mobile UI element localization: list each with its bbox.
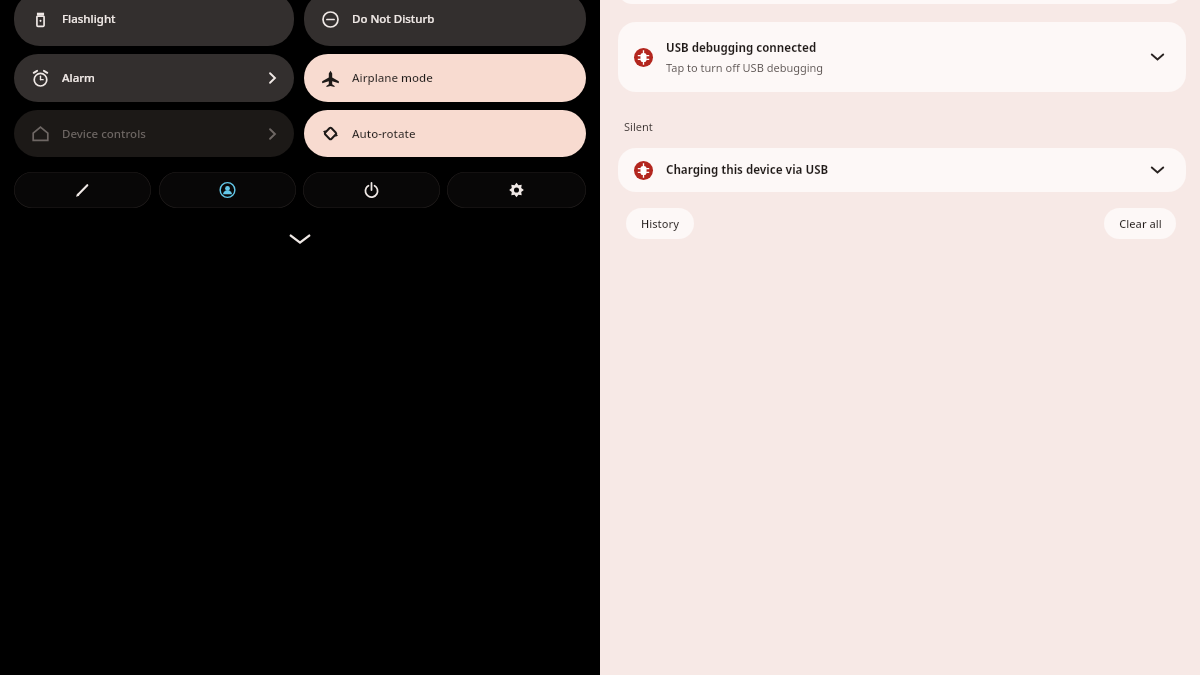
staticText: Do Not Disturb — [352, 11, 435, 27]
button[interactable]: Edit — [14, 172, 151, 208]
button[interactable]: Settings — [447, 172, 586, 208]
staticText: Airplane mode — [352, 70, 433, 86]
button[interactable]: Expand notification — [1144, 44, 1170, 70]
button[interactable]: Flashlight — [14, 0, 294, 46]
button[interactable]: Airplane mode — [304, 54, 586, 102]
button[interactable]: USB debugging connected — [618, 22, 1186, 92]
staticText: Device controls — [62, 126, 146, 142]
staticText: Auto-rotate — [352, 126, 416, 142]
staticText: Clear all — [1119, 216, 1162, 231]
staticText: Silent — [624, 119, 653, 134]
button[interactable]: Alarm — [14, 54, 294, 102]
button[interactable]: User — [159, 172, 296, 208]
staticText: Flashlight — [62, 11, 116, 27]
staticText: Tap to turn off USB debugging — [666, 60, 824, 75]
button[interactable]: Do Not Disturb — [304, 0, 586, 46]
button[interactable]: Power — [303, 172, 440, 208]
staticText: USB debugging connected — [666, 40, 817, 56]
button[interactable]: Charging this device via USB — [618, 148, 1186, 192]
button[interactable]: History — [626, 208, 694, 239]
button[interactable]: Auto-rotate — [304, 110, 586, 157]
button[interactable]: Device controls — [14, 110, 294, 157]
staticText: Alarm — [62, 70, 95, 86]
button[interactable]: Clear all — [1104, 208, 1176, 239]
staticText: History — [641, 216, 679, 231]
button[interactable]: Expand notification — [1144, 157, 1170, 183]
staticText: Charging this device via USB — [666, 162, 829, 178]
button[interactable]: Expand — [270, 224, 330, 254]
